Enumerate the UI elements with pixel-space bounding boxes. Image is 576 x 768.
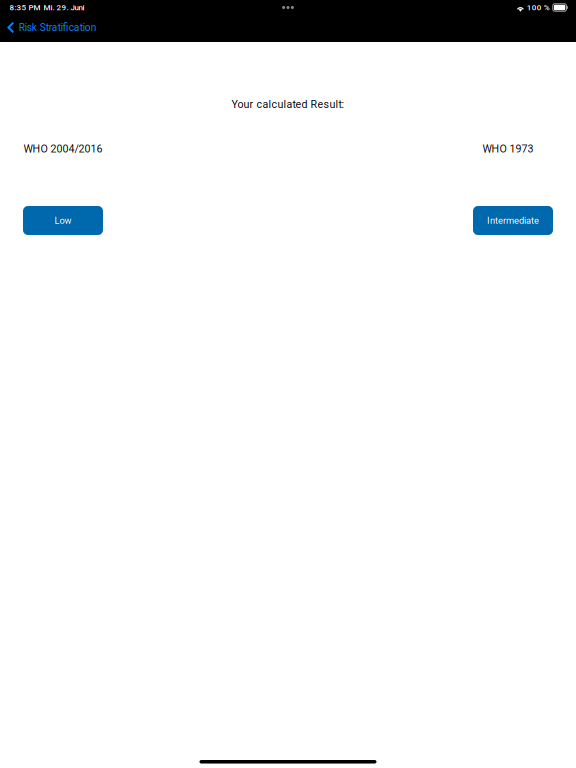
- staticText: Low: [54, 215, 71, 226]
- staticText: Mi. 29. Juni: [43, 3, 84, 12]
- button[interactable]: Risk Stratification: [0, 17, 105, 38]
- button[interactable]: Low: [23, 206, 103, 235]
- staticText: 100 %: [527, 3, 550, 12]
- staticText: 8:35 PM: [9, 3, 40, 12]
- button[interactable]: Intermediate: [473, 206, 553, 235]
- staticText: Intermediate: [487, 215, 539, 226]
- staticText: Risk Stratification: [19, 22, 97, 33]
- staticText: Your calculated Result:: [231, 98, 344, 110]
- staticText: WHO 2004/2016: [23, 142, 102, 155]
- staticText: WHO 1973: [482, 142, 533, 155]
